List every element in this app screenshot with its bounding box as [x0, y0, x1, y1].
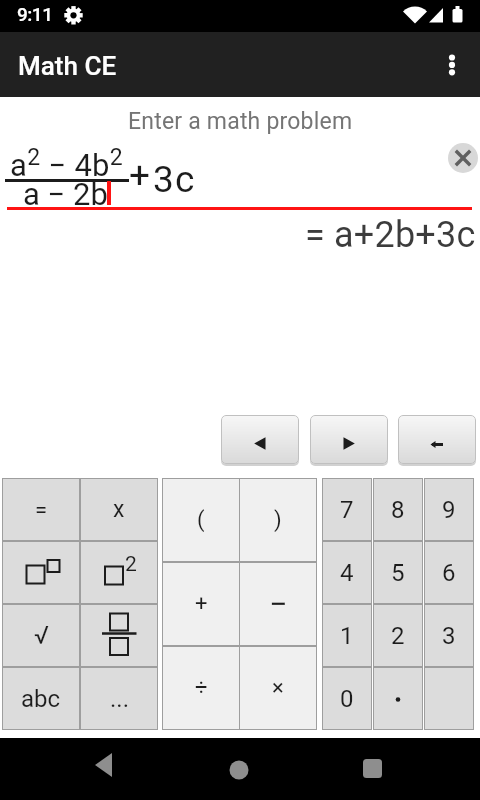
button[interactable]: √ — [2, 604, 80, 667]
button[interactable]: 7 — [322, 478, 372, 541]
button[interactable]: = — [2, 478, 80, 541]
button[interactable] — [2, 541, 80, 604]
button[interactable] — [215, 746, 263, 794]
staticText: 3c — [153, 158, 196, 201]
staticText: + — [129, 154, 150, 197]
staticText: = — [35, 497, 48, 523]
button[interactable]: 2 — [80, 541, 158, 604]
button[interactable] — [398, 415, 476, 464]
button[interactable] — [373, 667, 423, 730]
staticText: ) — [274, 507, 282, 533]
button[interactable]: abc — [2, 667, 80, 730]
staticText: ( — [197, 507, 205, 533]
button[interactable]: − — [239, 562, 317, 646]
staticText: Enter a math problem — [128, 108, 353, 135]
staticText: 3 — [442, 622, 456, 650]
button[interactable]: 3 — [424, 604, 474, 667]
button[interactable] — [80, 746, 128, 794]
button[interactable]: + — [162, 562, 240, 646]
staticText: abc — [21, 685, 61, 713]
staticText: √ — [34, 621, 49, 650]
button[interactable]: ( — [162, 478, 240, 562]
button[interactable]: ... — [80, 667, 158, 730]
button[interactable]: 1 — [322, 604, 372, 667]
staticText: 5 — [391, 559, 405, 587]
button[interactable]: 4 — [322, 541, 372, 604]
staticText: 4 — [340, 559, 354, 587]
staticText: ... — [110, 685, 129, 713]
button[interactable]: × — [239, 646, 317, 730]
staticText: − — [269, 585, 288, 623]
button[interactable]: 6 — [424, 541, 474, 604]
button[interactable] — [221, 415, 299, 464]
staticText: Math CE — [18, 51, 117, 81]
button[interactable]: ) — [239, 478, 317, 562]
button[interactable]: 0 — [322, 667, 372, 730]
staticText: a2 − 4b2 — [10, 144, 124, 184]
staticText: ÷ — [195, 675, 208, 701]
staticText: 8 — [391, 496, 405, 524]
button[interactable]: x — [80, 478, 158, 541]
staticText: 6 — [442, 559, 456, 587]
staticText: 2 — [125, 552, 137, 577]
button[interactable]: ÷ — [162, 646, 240, 730]
staticText: = a+2b+3c — [305, 214, 476, 256]
staticText: 2 — [391, 622, 405, 650]
button[interactable] — [349, 746, 397, 794]
button[interactable]: 2 — [373, 604, 423, 667]
button[interactable] — [448, 143, 478, 173]
staticText: 0 — [340, 685, 354, 713]
staticText: a − 2b — [23, 176, 108, 212]
button[interactable] — [310, 415, 388, 464]
button[interactable]: 9 — [424, 478, 474, 541]
staticText: 1 — [340, 622, 354, 650]
button[interactable]: 8 — [373, 478, 423, 541]
staticText: + — [195, 591, 208, 617]
button[interactable] — [438, 45, 474, 85]
staticText: x — [113, 496, 125, 523]
staticText: 9:11 — [17, 3, 53, 25]
button[interactable] — [80, 604, 158, 667]
staticText: 7 — [340, 496, 354, 524]
staticText: × — [272, 675, 284, 701]
button[interactable]: 5 — [373, 541, 423, 604]
staticText: 9 — [442, 496, 456, 524]
button[interactable] — [424, 667, 474, 730]
